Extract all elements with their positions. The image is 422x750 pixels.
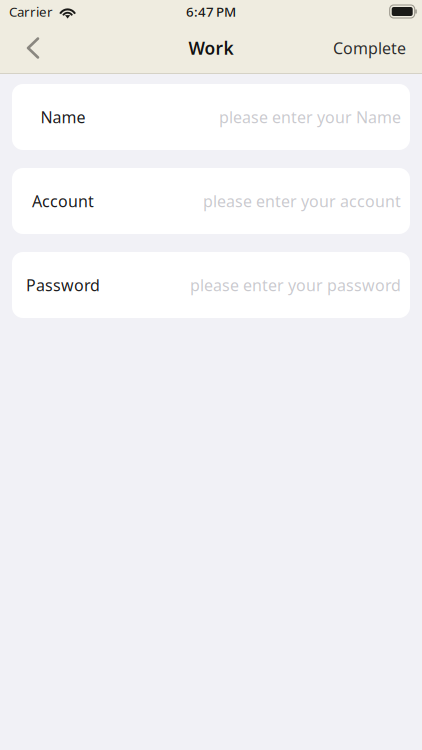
staticText: please enter your Name: [219, 106, 401, 128]
button[interactable]: Name: [12, 84, 410, 150]
staticText: 6:47 PM: [186, 3, 236, 20]
button[interactable]: Back: [13, 23, 53, 73]
staticText: Name: [40, 106, 85, 128]
staticText: please enter your password: [190, 274, 401, 296]
staticText: Carrier: [9, 3, 53, 20]
button[interactable]: Password: [12, 252, 410, 318]
staticText: please enter your account: [203, 190, 401, 212]
staticText: Work: [188, 36, 233, 59]
staticText: Password: [26, 274, 100, 296]
staticText: Complete: [333, 37, 406, 59]
button[interactable]: Complete: [323, 23, 416, 73]
staticText: Account: [32, 190, 94, 212]
button[interactable]: Account: [12, 168, 410, 234]
